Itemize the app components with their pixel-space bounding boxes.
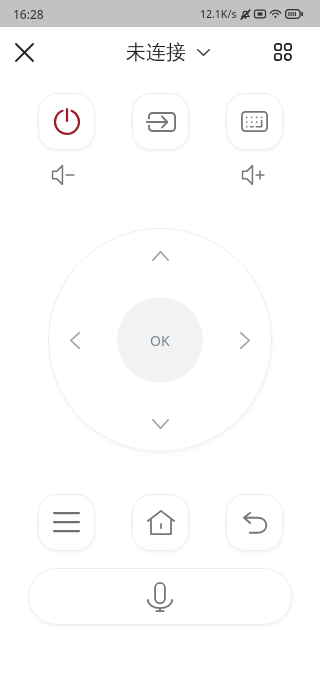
button[interactable]: Volume up xyxy=(232,153,276,197)
button[interactable]: Right xyxy=(223,318,267,362)
button[interactable]: Left xyxy=(53,318,97,362)
button[interactable]: Menu xyxy=(38,494,95,551)
button[interactable]: Power xyxy=(38,93,95,150)
button[interactable]: Back xyxy=(226,494,283,551)
staticText: 未连接 xyxy=(126,40,186,65)
button[interactable]: Close xyxy=(4,32,44,72)
staticText: 12.1K/s xyxy=(200,7,237,21)
button[interactable]: Input source xyxy=(132,93,189,150)
button[interactable]: Volume down xyxy=(42,153,86,197)
button[interactable]: Keyboard xyxy=(226,93,283,150)
button[interactable]: Apps xyxy=(263,32,303,72)
staticText: OK xyxy=(150,331,170,350)
staticText: 16:28 xyxy=(13,6,44,22)
button[interactable]: Up xyxy=(138,234,182,278)
button[interactable]: Voice input xyxy=(28,568,292,625)
button[interactable]: 未连接 xyxy=(118,35,218,70)
button[interactable]: Down xyxy=(138,402,182,446)
button[interactable]: Home xyxy=(132,494,189,551)
button[interactable]: OK xyxy=(117,297,203,383)
